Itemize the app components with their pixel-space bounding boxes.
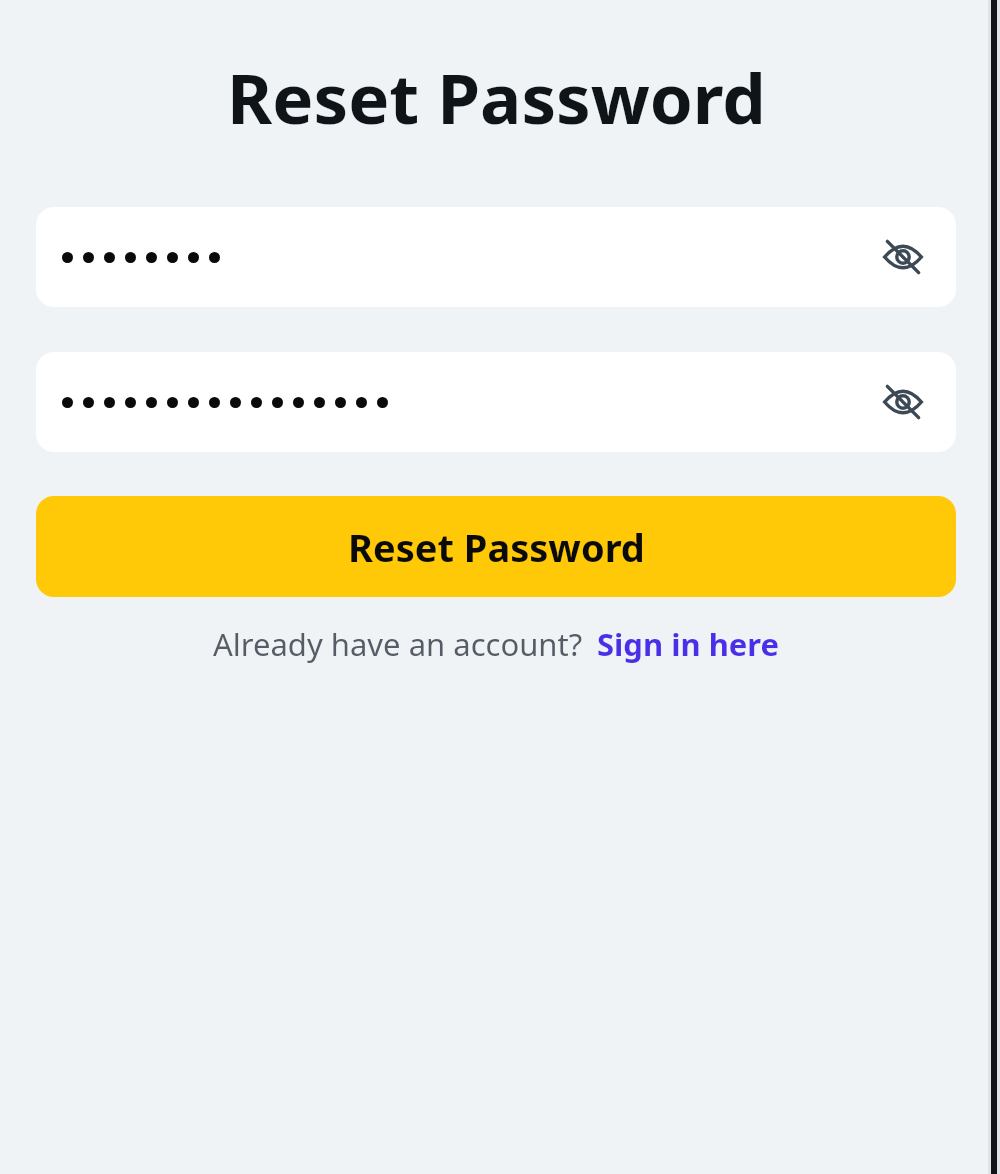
button[interactable]: Show confirm password xyxy=(874,373,932,431)
button[interactable]: Sign in here xyxy=(597,623,780,665)
staticText: Reset Password xyxy=(348,521,645,573)
button[interactable]: Show confirm password xyxy=(36,352,956,452)
staticText: Reset Password xyxy=(227,50,766,142)
button[interactable]: Show password xyxy=(874,228,932,286)
staticText: Sign in here xyxy=(597,623,780,665)
button[interactable]: Reset Password xyxy=(36,496,956,597)
button[interactable]: Show password xyxy=(36,207,956,307)
staticText: Already have an account? xyxy=(213,623,583,665)
